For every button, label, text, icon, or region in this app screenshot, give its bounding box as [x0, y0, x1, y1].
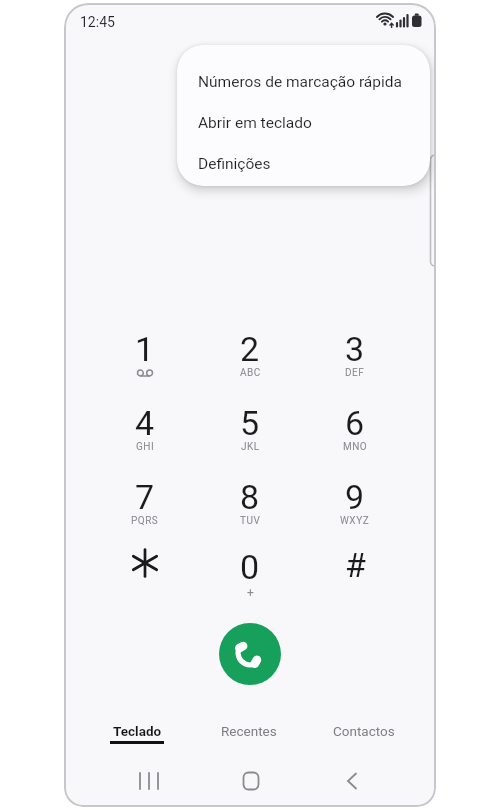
button[interactable]: 4 — [93, 390, 197, 460]
button[interactable]: 1 — [93, 316, 197, 386]
button[interactable] — [324, 759, 380, 803]
staticText: GHI — [136, 441, 155, 453]
staticText: Definições — [198, 155, 271, 173]
staticText: Abrir em teclado — [198, 114, 312, 132]
button[interactable]: 8 — [198, 464, 302, 534]
staticText: 8 — [240, 477, 260, 517]
staticText: DEF — [345, 367, 365, 379]
button[interactable]: Teclado — [85, 711, 189, 751]
staticText: MNO — [343, 441, 368, 453]
staticText: JKL — [241, 441, 260, 453]
staticText: 3 — [345, 329, 365, 369]
button[interactable]: Recentes — [197, 711, 301, 751]
button[interactable] — [219, 623, 281, 685]
button[interactable]: Contactos — [312, 711, 416, 751]
button[interactable]: 9 — [303, 464, 407, 534]
button[interactable]: # — [303, 532, 407, 602]
staticText: Teclado — [113, 723, 162, 739]
button[interactable]: Definições — [177, 143, 430, 184]
staticText: Contactos — [333, 723, 395, 739]
staticText: 1 — [135, 329, 155, 369]
staticText: # — [345, 545, 366, 585]
staticText: 9 — [345, 477, 365, 517]
button[interactable]: Abrir em teclado — [177, 102, 430, 143]
staticText: 7 — [135, 477, 155, 517]
button[interactable]: 6 — [303, 390, 407, 460]
button[interactable] — [223, 759, 279, 803]
staticText: 6 — [345, 403, 365, 443]
staticText: PQRS — [131, 515, 159, 527]
staticText: Números de marcação rápida — [198, 73, 402, 91]
staticText: 4 — [135, 403, 155, 443]
button[interactable]: 0 — [198, 534, 302, 604]
staticText: 2 — [240, 329, 260, 369]
staticText: ABC — [240, 367, 261, 379]
button[interactable]: 2 — [198, 316, 302, 386]
staticText: 12:45 — [80, 14, 115, 30]
staticText: + — [247, 586, 254, 600]
button[interactable]: Números de marcação rápida — [177, 61, 430, 102]
staticText: WXYZ — [340, 515, 370, 527]
button[interactable] — [121, 759, 177, 803]
staticText: Recentes — [221, 723, 277, 739]
staticText: 0 — [240, 547, 260, 587]
staticText: TUV — [240, 515, 261, 527]
button[interactable]: 5 — [198, 390, 302, 460]
staticText: 5 — [240, 403, 260, 443]
button[interactable]: 3 — [303, 316, 407, 386]
button[interactable]: 7 — [93, 464, 197, 534]
button[interactable] — [93, 532, 197, 602]
